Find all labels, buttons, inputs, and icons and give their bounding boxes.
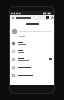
- button[interactable]: Navigate up: [11, 16, 15, 20]
- button[interactable]: [10, 27, 54, 36]
- button[interactable]: Toggle: [49, 58, 52, 60]
- button[interactable]: [10, 71, 54, 79]
- button[interactable]: Toggle: [10, 55, 54, 63]
- button[interactable]: [10, 63, 54, 71]
- button[interactable]: Expand: [50, 16, 53, 19]
- button[interactable]: [10, 39, 54, 47]
- button[interactable]: [10, 47, 54, 55]
